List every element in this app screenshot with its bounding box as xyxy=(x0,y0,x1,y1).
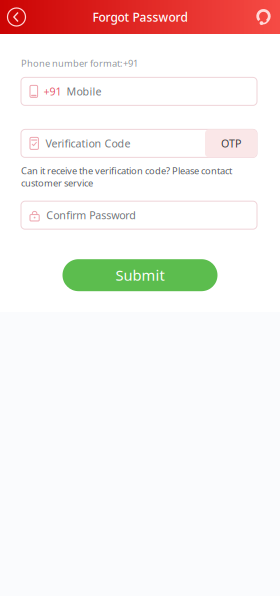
staticText: Submit xyxy=(115,265,164,285)
staticText: Forgot Password xyxy=(92,9,187,25)
button[interactable]: Submit xyxy=(62,259,217,291)
staticText: +91 xyxy=(44,84,62,98)
staticText: OTP xyxy=(221,136,241,150)
staticText: Confirm Password xyxy=(46,208,136,222)
button[interactable]: OTP xyxy=(205,129,257,157)
button[interactable]: Back xyxy=(0,0,33,34)
staticText: Mobile xyxy=(67,84,102,98)
staticText: Phone number format:+91 xyxy=(21,57,138,69)
staticText: Verification Code xyxy=(45,136,130,150)
button[interactable]: Customer service xyxy=(247,0,280,34)
staticText: Can it receive the verification code? Pl… xyxy=(21,164,232,189)
